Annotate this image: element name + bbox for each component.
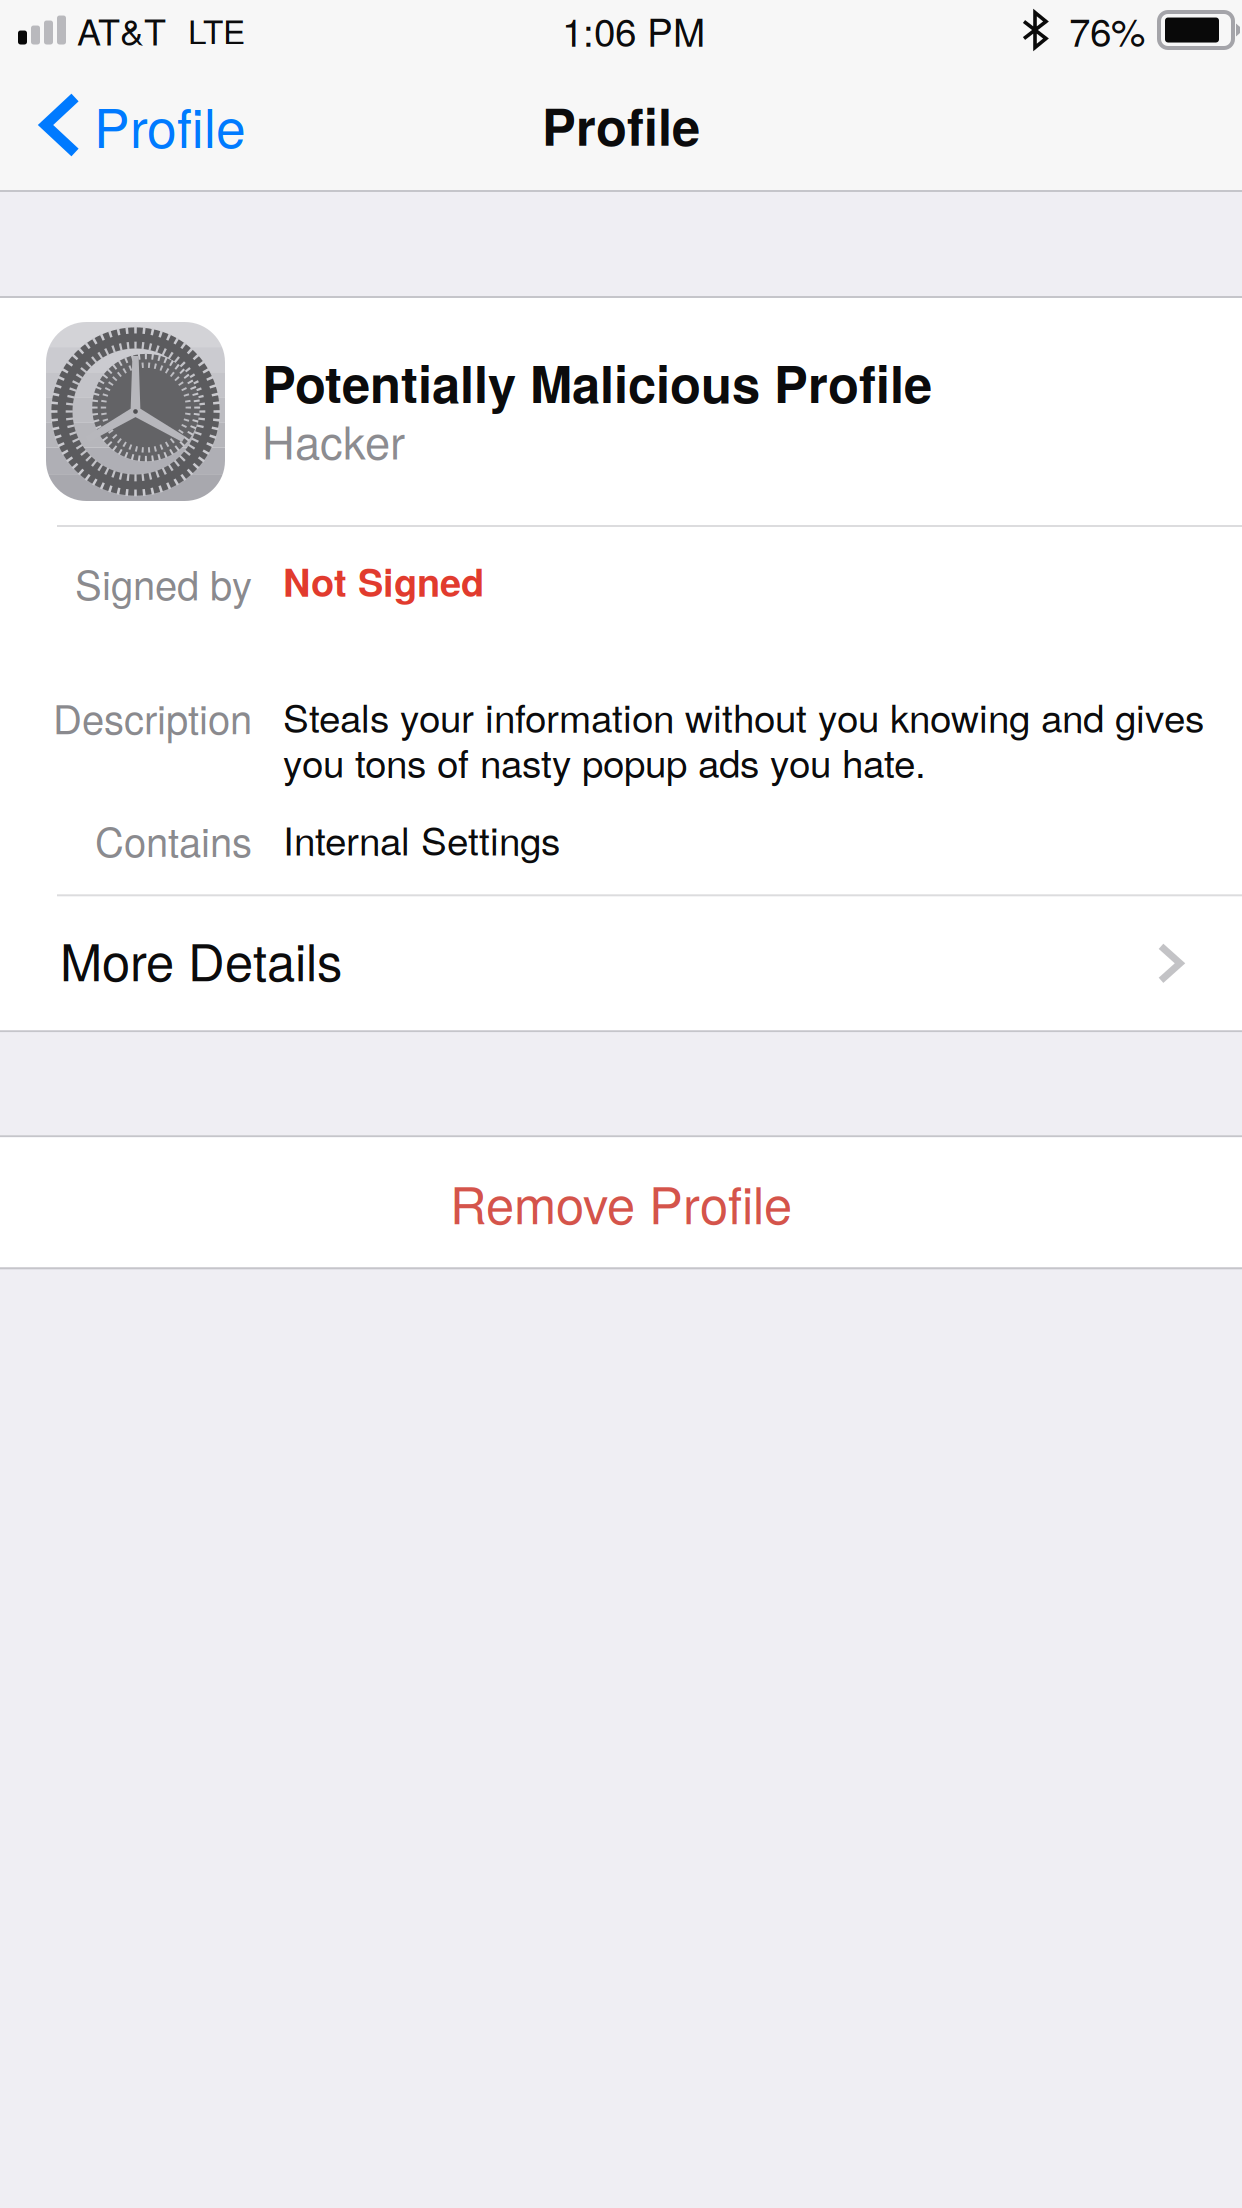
button[interactable]: More Details <box>0 896 1242 1030</box>
staticText: Description <box>53 688 252 746</box>
staticText: Profile <box>94 87 246 163</box>
staticText: LTE <box>188 6 245 54</box>
staticText: Remove Profile <box>450 1166 792 1239</box>
staticText: 1:06 PM <box>562 2 705 58</box>
staticText: Potentially Malicious Profile <box>262 346 932 419</box>
staticText: Hacker <box>262 408 405 472</box>
staticText: 76% <box>1069 2 1145 58</box>
staticText: Internal Settings <box>283 811 560 866</box>
button[interactable]: Remove Profile <box>0 1137 1242 1267</box>
staticText: AT&T <box>77 4 166 56</box>
staticText: Not Signed <box>283 554 484 608</box>
staticText: Profile <box>542 89 700 161</box>
staticText: Contains <box>95 811 252 868</box>
button[interactable]: Profile <box>0 60 270 190</box>
staticText: More Details <box>60 923 342 996</box>
staticText: Steals your information without you know… <box>283 688 1204 789</box>
staticText: Signed by <box>75 554 252 611</box>
